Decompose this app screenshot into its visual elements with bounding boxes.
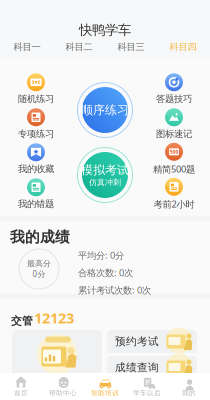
button[interactable]: 科目四 <box>157 41 209 53</box>
button[interactable]: 科目一 <box>1 41 53 53</box>
staticText: 顺序练习 <box>81 103 129 117</box>
staticText: 合格次数: 0次 <box>78 266 133 279</box>
staticText: 最高分 <box>27 259 51 269</box>
button[interactable]: 科目二 <box>53 41 105 53</box>
button[interactable]: 帮助中心 <box>42 373 84 400</box>
button[interactable]: 预约考试 <box>107 330 197 353</box>
button[interactable]: 我的收藏 <box>6 144 66 174</box>
staticText: 智能培训 <box>91 389 119 397</box>
staticText: 图标速记 <box>156 128 192 140</box>
staticText: 随机练习 <box>18 93 54 105</box>
button[interactable]: 我的 <box>168 373 210 400</box>
staticText: 模拟考试 <box>81 163 129 177</box>
staticText: 我的错题 <box>18 198 54 210</box>
staticText: 12123 <box>34 308 74 327</box>
button[interactable]: 模拟考试 <box>76 146 134 204</box>
staticText: 科目二 <box>65 41 92 53</box>
staticText: 成绩查询 <box>115 361 159 374</box>
staticText: 科目一 <box>13 41 40 53</box>
staticText: 考前2小时 <box>153 198 194 210</box>
staticText: 快鸭学车 <box>79 22 131 38</box>
button[interactable]: 智能培训 <box>84 373 126 400</box>
button[interactable]: 图标速记 <box>144 109 204 139</box>
button[interactable]: 考前2小时 <box>144 179 204 209</box>
button[interactable]: 科目三 <box>105 41 157 53</box>
staticText: 平均分: 0分 <box>78 249 124 261</box>
staticText: 交管 <box>11 314 33 327</box>
staticText: 答题技巧 <box>156 93 192 105</box>
button[interactable]: 500 <box>144 144 204 174</box>
button[interactable]: 答题技巧 <box>144 74 204 104</box>
staticText: 我的 <box>182 389 196 397</box>
staticText: 帮助中心 <box>49 389 77 397</box>
staticText: 学车以后 <box>133 389 161 397</box>
staticText: 我的收藏 <box>18 163 54 175</box>
staticText: 科目三 <box>117 41 144 53</box>
staticText: 0分 <box>32 269 45 279</box>
button[interactable]: 专项练习 <box>6 109 66 139</box>
button[interactable]: 顺序练习 <box>76 81 134 139</box>
button[interactable]: 我的错题 <box>6 179 66 209</box>
button[interactable]: 学车以后 <box>126 373 168 400</box>
button[interactable]: 首页 <box>0 373 42 400</box>
staticText: 专项练习 <box>18 128 54 140</box>
staticText: 我的成绩 <box>10 228 70 246</box>
button[interactable] <box>12 330 102 379</box>
staticText: 首页 <box>14 389 28 397</box>
staticText: 500 <box>169 148 178 155</box>
button[interactable]: 成绩查询 <box>107 356 197 379</box>
staticText: 精简500题 <box>153 163 195 175</box>
staticText: 科目四 <box>169 41 196 53</box>
button[interactable]: 随机练习 <box>6 74 66 104</box>
staticText: 仿真冲刺 <box>89 177 121 187</box>
staticText: 累计考试次数: 0次 <box>78 284 151 296</box>
staticText: 预约考试 <box>115 335 159 348</box>
